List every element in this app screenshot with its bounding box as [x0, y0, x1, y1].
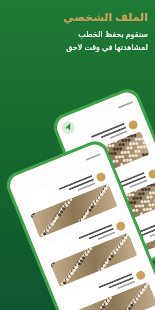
staticText: الملف الشخصي [63, 9, 148, 24]
button[interactable] [106, 210, 155, 267]
button[interactable] [39, 213, 143, 292]
button[interactable] [86, 161, 155, 234]
staticText: لمشاهدتها في وقت لاحق [66, 41, 148, 52]
button[interactable] [20, 164, 123, 243]
button[interactable] [59, 262, 155, 310]
button[interactable]: Send [60, 119, 77, 136]
button[interactable] [67, 112, 155, 185]
staticText: سنقوم بحفظ الخطب [78, 28, 148, 39]
